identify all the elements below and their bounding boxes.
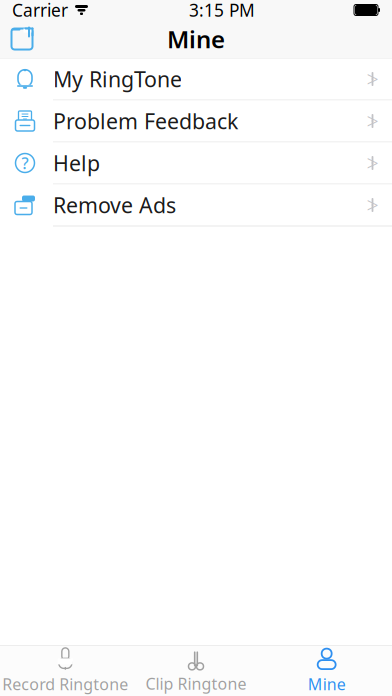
button[interactable]: Clip Ringtone: [131, 646, 261, 695]
staticText: My RingTone: [53, 65, 182, 93]
button[interactable]: Record Ringtone: [0, 646, 131, 695]
staticText: Help: [53, 149, 100, 177]
button[interactable]: Share: [0, 20, 44, 58]
staticText: Problem Feedback: [53, 107, 238, 135]
staticText: Carrier: [12, 0, 68, 21]
staticText: Mine: [308, 673, 346, 695]
button[interactable]: ?: [0, 142, 392, 184]
button[interactable]: My RingTone: [0, 58, 392, 100]
staticText: Mine: [167, 23, 225, 55]
staticText: >: [366, 107, 378, 135]
button[interactable]: Remove Ads: [0, 184, 392, 226]
staticText: 3:15 PM: [189, 0, 255, 21]
button[interactable]: Problem Feedback: [0, 100, 392, 142]
staticText: >: [366, 191, 378, 219]
staticText: >: [366, 149, 378, 177]
staticText: Remove Ads: [53, 191, 176, 219]
staticText: Clip Ringtone: [145, 673, 246, 694]
staticText: >: [366, 65, 378, 93]
button[interactable]: Mine: [261, 646, 392, 695]
staticText: ?: [21, 152, 28, 174]
staticText: Record Ringtone: [2, 673, 128, 695]
